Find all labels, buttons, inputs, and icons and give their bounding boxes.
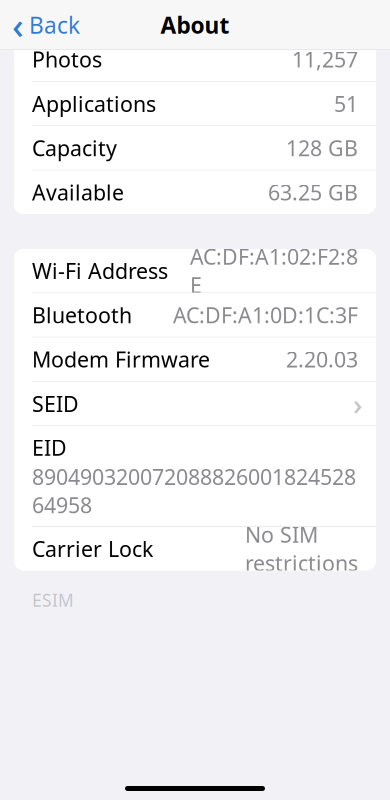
staticText: SEID — [32, 389, 79, 418]
button[interactable]: SEID — [14, 382, 376, 425]
button[interactable]: ‹ — [0, 0, 80, 55]
staticText: 128 GB — [286, 134, 358, 162]
button[interactable]: Videos — [14, 0, 376, 37]
staticText: 51 — [334, 89, 358, 118]
staticText: AC:DF:A1:0D:1C:3F — [173, 301, 358, 329]
staticText: Bluetooth — [32, 301, 132, 329]
button[interactable]: Available — [14, 170, 376, 214]
staticText: 11,257 — [292, 45, 358, 73]
staticText: AC:DF:A1:02:F2:8E — [190, 242, 358, 299]
button[interactable]: Modem Firmware — [14, 338, 376, 381]
staticText: Applications — [32, 89, 156, 118]
button[interactable]: Capacity — [14, 126, 376, 170]
staticText: EID — [32, 433, 67, 461]
staticText: About — [160, 10, 229, 40]
button[interactable]: Wi-Fi Address — [14, 249, 376, 292]
staticText: Back — [29, 10, 80, 40]
staticText: Available — [32, 178, 124, 206]
staticText: ESIM — [32, 588, 74, 611]
staticText: › — [353, 384, 363, 423]
button[interactable]: Applications — [14, 82, 376, 125]
staticText: Carrier Lock — [32, 535, 153, 563]
staticText: 2.20.03 — [286, 345, 358, 373]
staticText: Capacity — [32, 134, 117, 162]
staticText: ‹ — [12, 1, 24, 49]
staticText: Videos — [32, 1, 99, 29]
button[interactable]: EID — [14, 426, 376, 526]
staticText: 63.25 GB — [268, 178, 358, 206]
staticText: Photos — [32, 45, 102, 73]
staticText: No SIM restrictions — [245, 520, 358, 577]
staticText: Wi-Fi Address — [32, 257, 168, 285]
button[interactable]: Carrier Lock — [14, 527, 376, 570]
button[interactable]: Bluetooth — [14, 293, 376, 337]
staticText: 89049032007208882600182452864958 — [32, 462, 356, 519]
staticText: Modem Firmware — [32, 345, 210, 373]
button[interactable]: Photos — [14, 38, 376, 81]
